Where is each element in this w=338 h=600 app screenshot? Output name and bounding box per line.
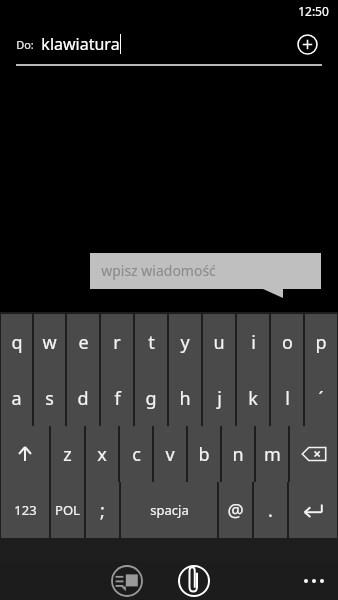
button[interactable]: g: [135, 370, 167, 426]
button[interactable]: x: [86, 426, 118, 482]
button[interactable]: Backspace: [290, 426, 337, 482]
staticText: d: [77, 386, 89, 411]
button[interactable]: @: [219, 482, 252, 538]
button[interactable]: 123: [1, 482, 49, 538]
button[interactable]: y: [169, 314, 201, 370]
staticText: t: [148, 330, 155, 355]
button[interactable]: Attach: [175, 562, 213, 600]
button[interactable]: b: [188, 426, 220, 482]
staticText: ;: [100, 498, 105, 523]
button[interactable]: POL: [51, 482, 84, 538]
staticText: p: [315, 330, 327, 355]
staticText: n: [232, 442, 244, 467]
button[interactable]: .: [254, 482, 287, 538]
button[interactable]: More options: [298, 565, 330, 597]
button[interactable]: Add recipient: [292, 29, 322, 59]
staticText: z: [63, 442, 72, 467]
staticText: klawiatura: [41, 33, 120, 55]
staticText: ´: [318, 386, 324, 411]
button[interactable]: i: [237, 314, 269, 370]
button[interactable]: z: [51, 426, 84, 482]
button[interactable]: r: [101, 314, 133, 370]
staticText: k: [248, 386, 258, 411]
staticText: r: [113, 330, 121, 355]
staticText: i: [251, 330, 256, 355]
staticText: j: [217, 386, 222, 411]
staticText: .: [268, 498, 273, 523]
staticText: q: [11, 330, 23, 355]
button[interactable]: ;: [86, 482, 119, 538]
button[interactable]: s: [34, 370, 65, 426]
staticText: w: [42, 330, 57, 355]
button[interactable]: h: [169, 370, 201, 426]
staticText: s: [45, 386, 54, 411]
button[interactable]: v: [154, 426, 186, 482]
staticText: POL: [55, 501, 80, 519]
staticText: x: [97, 442, 107, 467]
staticText: @: [227, 498, 244, 523]
button[interactable]: m: [256, 426, 288, 482]
staticText: h: [179, 386, 191, 411]
button[interactable]: n: [222, 426, 254, 482]
button[interactable]: ´: [305, 370, 337, 426]
staticText: 12:50: [298, 3, 329, 19]
staticText: Do:: [16, 37, 34, 52]
button[interactable]: Enter: [289, 482, 337, 538]
button[interactable]: t: [135, 314, 167, 370]
button[interactable]: Shift: [1, 426, 49, 482]
staticText: f: [114, 386, 121, 411]
button[interactable]: o: [271, 314, 303, 370]
staticText: 123: [14, 501, 37, 519]
button[interactable]: f: [101, 370, 133, 426]
staticText: l: [285, 386, 290, 411]
button[interactable]: q: [1, 314, 32, 370]
staticText: g: [145, 386, 157, 411]
staticText: e: [78, 330, 89, 355]
button[interactable]: c: [120, 426, 152, 482]
staticText: u: [213, 330, 225, 355]
button[interactable]: wpisz wiadomość: [90, 253, 321, 298]
staticText: v: [165, 442, 175, 467]
staticText: wpisz wiadomość: [101, 261, 216, 280]
button[interactable]: p: [305, 314, 337, 370]
button[interactable]: u: [203, 314, 235, 370]
button[interactable]: w: [34, 314, 65, 370]
button[interactable]: d: [67, 370, 99, 426]
staticText: spacja: [150, 501, 189, 519]
button[interactable]: Send: [108, 562, 146, 600]
button[interactable]: e: [67, 314, 99, 370]
staticText: y: [180, 330, 190, 355]
button[interactable]: l: [271, 370, 303, 426]
staticText: a: [11, 386, 22, 411]
staticText: m: [264, 442, 281, 467]
staticText: c: [132, 442, 141, 467]
button[interactable]: k: [237, 370, 269, 426]
staticText: b: [198, 442, 210, 467]
staticText: o: [282, 330, 293, 355]
button[interactable]: j: [203, 370, 235, 426]
button[interactable]: a: [1, 370, 32, 426]
button[interactable]: spacja: [121, 482, 217, 538]
